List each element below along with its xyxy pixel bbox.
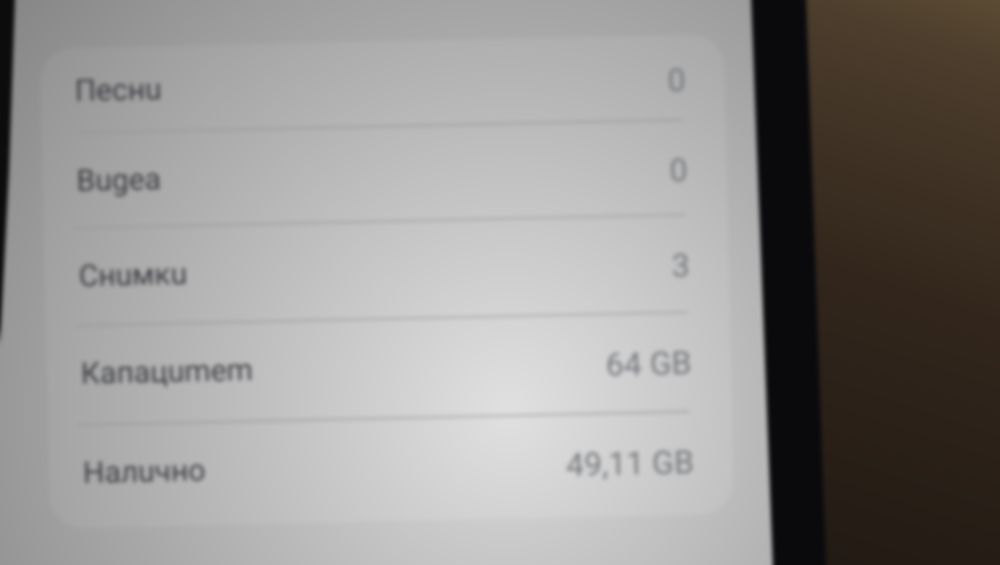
button[interactable]: [46, 320, 728, 416]
button[interactable]: [46, 32, 728, 128]
button[interactable]: [46, 416, 728, 512]
button[interactable]: [46, 128, 728, 224]
button[interactable]: [46, 224, 728, 320]
